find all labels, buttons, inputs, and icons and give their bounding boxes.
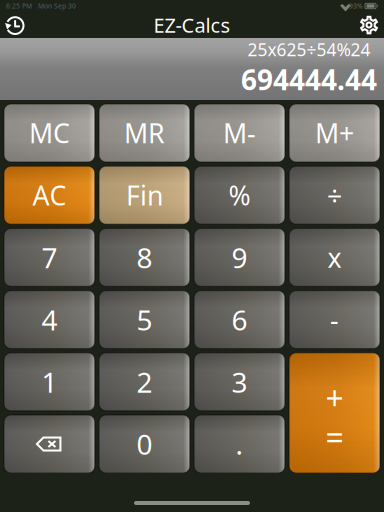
button[interactable]: +: [289, 353, 380, 473]
button[interactable]: ÷: [289, 166, 380, 224]
staticText: +: [326, 377, 344, 419]
button[interactable]: M-: [194, 104, 285, 162]
button[interactable]: 8: [99, 228, 190, 286]
button[interactable]: 0: [99, 415, 190, 473]
button[interactable]: 4: [4, 291, 95, 349]
button[interactable]: 9: [194, 228, 285, 286]
button[interactable]: %: [194, 166, 285, 224]
staticText: 7: [41, 239, 57, 276]
staticText: M+: [315, 115, 354, 151]
staticText: 4: [41, 301, 57, 338]
button[interactable]: 6: [194, 291, 285, 349]
staticText: Fin: [126, 177, 163, 213]
staticText: 694444.44: [241, 61, 377, 98]
button[interactable]: -: [289, 291, 380, 349]
button[interactable]: .: [194, 415, 285, 473]
staticText: M-: [223, 115, 256, 151]
button[interactable]: MC: [4, 104, 95, 162]
staticText: 25x625÷54%24: [247, 38, 370, 61]
button[interactable]: AC: [4, 166, 95, 224]
button[interactable]: Fin: [99, 166, 190, 224]
staticText: 9: [231, 239, 247, 276]
staticText: 6: [231, 301, 247, 338]
staticText: 93%: [349, 2, 363, 10]
staticText: 3: [231, 363, 247, 400]
staticText: MR: [124, 115, 165, 151]
staticText: EZ-Calcs: [153, 12, 230, 38]
staticText: x: [328, 240, 342, 275]
button[interactable]: M+: [289, 104, 380, 162]
staticText: 2: [136, 363, 152, 400]
button[interactable]: 7: [4, 228, 95, 286]
button[interactable]: Delete: [4, 415, 95, 473]
staticText: %: [228, 177, 250, 213]
staticText: 0: [136, 425, 152, 463]
button[interactable]: 1: [4, 353, 95, 411]
staticText: MC: [29, 115, 70, 151]
staticText: ÷: [327, 177, 342, 213]
staticText: 1: [41, 363, 57, 400]
button[interactable]: x: [289, 228, 380, 286]
button[interactable]: History: [2, 12, 27, 38]
button[interactable]: MR: [99, 104, 190, 162]
button[interactable]: Settings: [356, 12, 382, 38]
staticText: =: [326, 416, 344, 458]
staticText: 8: [136, 239, 152, 276]
button[interactable]: 2: [99, 353, 190, 411]
staticText: 6:25 PM Mon Sep 30: [6, 2, 76, 10]
staticText: 5: [136, 301, 152, 338]
staticText: AC: [32, 177, 66, 213]
button[interactable]: 5: [99, 291, 190, 349]
button[interactable]: 3: [194, 353, 285, 411]
staticText: .: [235, 425, 243, 463]
staticText: -: [330, 302, 339, 337]
